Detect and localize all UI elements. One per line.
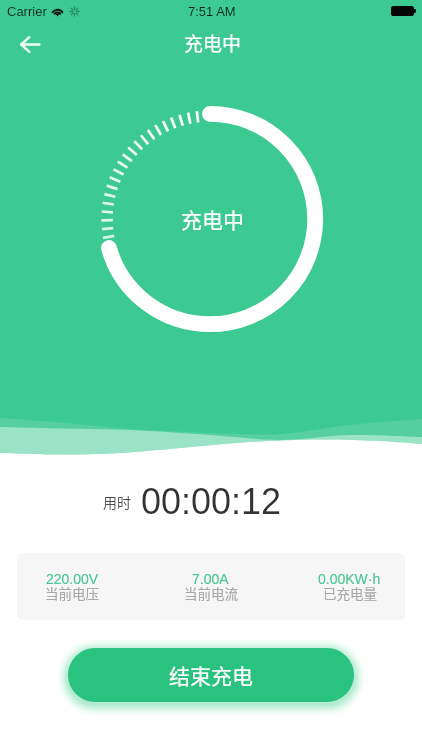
staticText: 用时 [103, 492, 131, 512]
staticText: 当前电流 [184, 583, 238, 603]
button[interactable]: Back [10, 24, 50, 64]
staticText: 充电中 [184, 29, 242, 57]
staticText: 7:51 AM [188, 4, 236, 19]
staticText: 当前电压 [45, 583, 99, 603]
staticText: Carrier [7, 4, 47, 19]
staticText: 220.00V [46, 571, 99, 587]
staticText: 00:00:12 [141, 481, 282, 521]
button[interactable]: 结束充电 [68, 648, 354, 702]
staticText: 充电中 [181, 204, 244, 234]
staticText: 0.00KW·h [318, 571, 381, 587]
staticText: 已充电量 [323, 583, 377, 603]
staticText: 结束充电 [169, 660, 253, 690]
staticText: 7.00A [192, 571, 229, 587]
